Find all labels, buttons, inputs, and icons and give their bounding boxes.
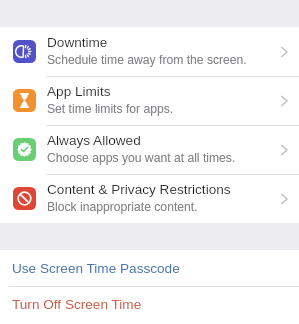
staticText: App Limits (47, 84, 111, 99)
button[interactable]: Always Allowed (0, 125, 299, 174)
button[interactable]: Use Screen Time Passcode (0, 250, 299, 286)
staticText: Content & Privacy Restrictions (47, 182, 231, 197)
staticText: Downtime (47, 35, 108, 50)
staticText: Block inappropriate content. (47, 200, 198, 214)
staticText: Always Allowed (47, 133, 141, 148)
staticText: Turn Off Screen Time (12, 297, 142, 312)
button[interactable]: Downtime (0, 27, 299, 76)
staticText: Choose apps you want at all times. (47, 151, 236, 165)
staticText: Schedule time away from the screen. (47, 53, 247, 67)
button[interactable]: App Limits (0, 76, 299, 125)
button[interactable]: Turn Off Screen Time (0, 286, 299, 322)
staticText: Set time limits for apps. (47, 102, 174, 116)
staticText: Use Screen Time Passcode (12, 261, 180, 276)
button[interactable]: Content & Privacy Restrictions (0, 174, 299, 223)
